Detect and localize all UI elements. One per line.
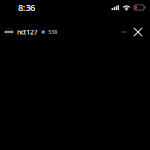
staticText: 538 — [48, 28, 57, 36]
button[interactable]: Close — [131, 25, 145, 39]
button[interactable]: More options — [119, 28, 131, 36]
staticText: 8:36 — [18, 1, 35, 14]
button[interactable]: nct127 profile — [4, 27, 45, 36]
staticText: nct127 — [17, 28, 38, 36]
button[interactable]: 538 viewers — [45, 28, 57, 36]
